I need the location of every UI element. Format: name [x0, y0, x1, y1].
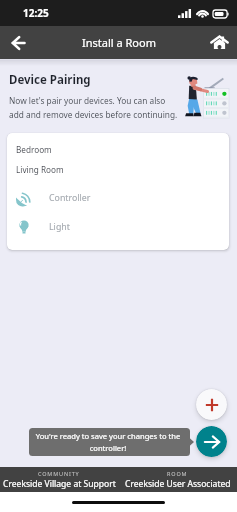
button[interactable]: Bedroom: [7, 139, 229, 159]
staticText: Creekside User Associated: [125, 478, 231, 490]
button[interactable]: Back: [0, 26, 36, 59]
staticText: COMMUNITY: [38, 470, 80, 477]
staticText: Now let's pair your devices. You can als…: [9, 95, 179, 120]
button[interactable]: Light: [7, 212, 229, 241]
staticText: You're ready to save your changes to the…: [35, 431, 181, 453]
staticText: ROOM: [167, 470, 188, 477]
staticText: Controller: [49, 192, 91, 204]
staticText: Device Pairing: [9, 72, 91, 88]
staticText: Living Room: [16, 164, 64, 175]
button[interactable]: COMMUNITY: [0, 467, 118, 492]
button[interactable]: You're ready to save your changes to the…: [29, 428, 194, 456]
button[interactable]: Add device: [196, 389, 227, 420]
staticText: Bedroom: [16, 144, 52, 155]
button[interactable]: Controller: [7, 183, 229, 212]
staticText: Light: [49, 221, 70, 233]
button[interactable]: ROOM: [118, 467, 237, 492]
staticText: 12:25: [23, 6, 49, 20]
button[interactable]: Home: [201, 26, 237, 59]
button[interactable]: Living Room: [7, 159, 229, 179]
staticText: Install a Room: [82, 35, 156, 50]
staticText: Creekside Village at Support: [3, 478, 116, 490]
button[interactable]: Continue: [196, 426, 227, 457]
